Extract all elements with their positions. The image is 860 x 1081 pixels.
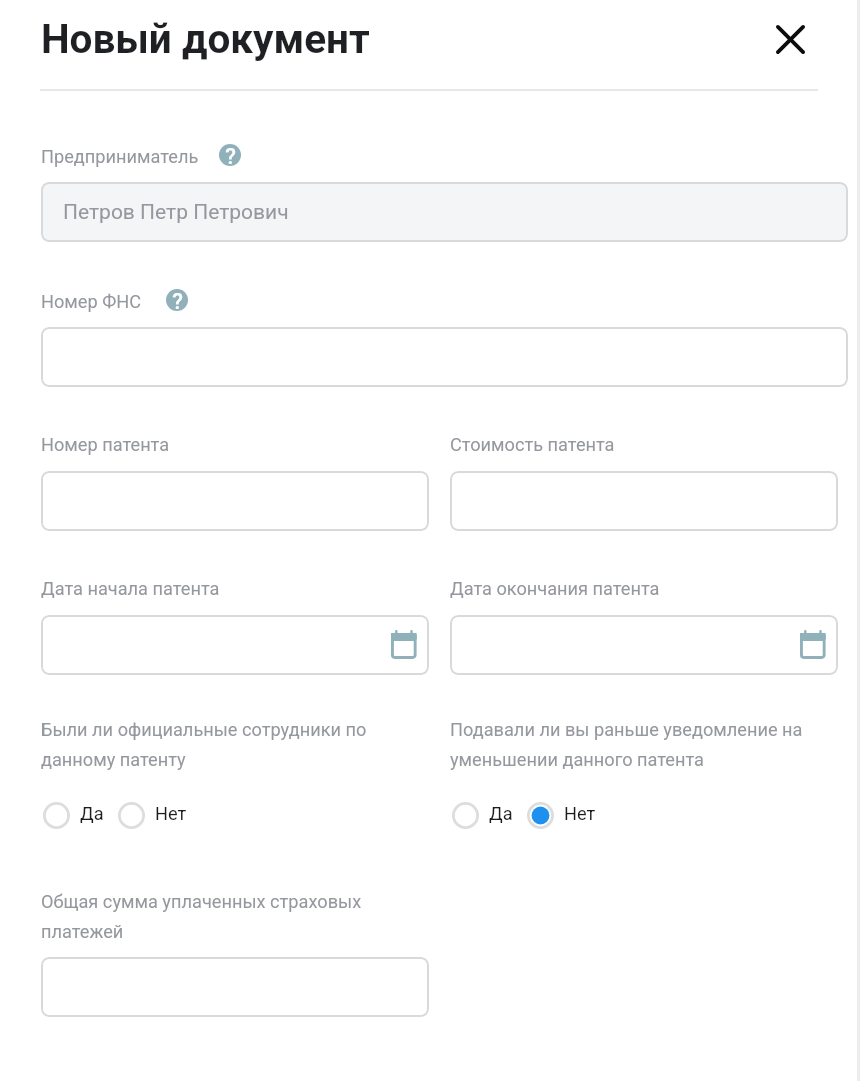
- staticText: Стоимость патента: [450, 427, 838, 457]
- button[interactable]: Нет: [118, 798, 187, 832]
- staticText: Номер патента: [41, 427, 429, 457]
- staticText: Дата начала патента: [41, 571, 429, 601]
- button[interactable]: Дата начала патента: [41, 615, 429, 675]
- button[interactable]: Нет: [527, 798, 596, 832]
- button[interactable]: Номер ФНС: [41, 327, 848, 387]
- staticText: Дата окончания патента: [450, 571, 838, 601]
- button[interactable]: Да: [452, 798, 513, 832]
- staticText: Новый документ: [41, 15, 370, 62]
- button[interactable]: Дата окончания патента: [450, 615, 838, 675]
- staticText: Подавали ли вы раньше уведомление на уме…: [450, 712, 838, 772]
- staticText: Петров Петр Петрович: [63, 200, 289, 225]
- staticText: Да: [489, 803, 513, 824]
- staticText: Предприниматель: [41, 139, 441, 169]
- staticText: Нет: [564, 803, 596, 824]
- button[interactable]: Справка: [214, 139, 246, 171]
- button[interactable]: Стоимость патента: [450, 471, 838, 531]
- staticText: Общая сумма уплаченных страховых платеже…: [41, 884, 429, 944]
- staticText: ?: [225, 144, 236, 166]
- staticText: Нет: [155, 803, 187, 824]
- staticText: Были ли официальные сотрудники по данном…: [41, 712, 429, 772]
- button[interactable]: Номер патента: [41, 471, 429, 531]
- button[interactable]: Да: [43, 798, 104, 832]
- button[interactable]: Общая сумма уплаченных страховых платеже…: [41, 957, 429, 1017]
- button[interactable]: Предприниматель: [41, 182, 848, 242]
- staticText: Номер ФНС: [41, 284, 441, 314]
- staticText: ?: [172, 289, 183, 311]
- staticText: Да: [80, 803, 104, 824]
- button[interactable]: Справка: [161, 284, 193, 316]
- button[interactable]: Закрыть: [769, 18, 812, 61]
